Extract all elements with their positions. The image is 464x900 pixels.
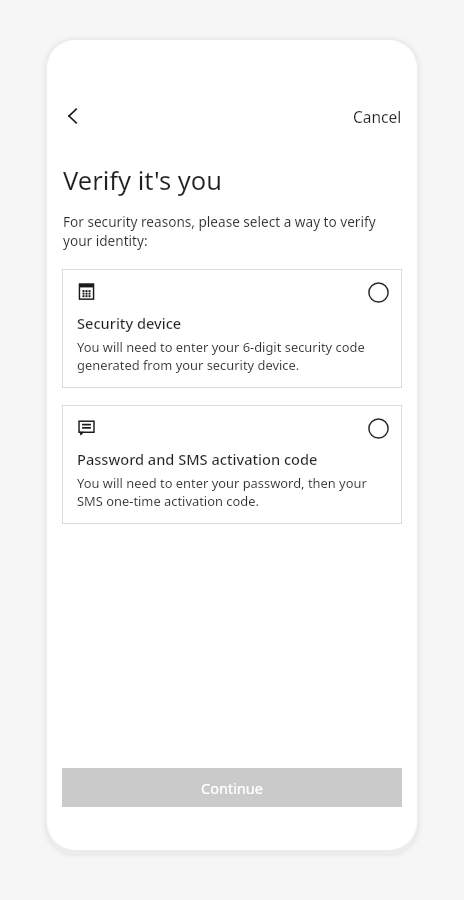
staticText: Verify it's you: [63, 163, 222, 198]
staticText: Cancel: [353, 106, 402, 127]
button[interactable]: Back: [53, 99, 93, 133]
staticText: Password and SMS activation code: [77, 449, 318, 469]
staticText: Continue: [201, 778, 263, 798]
staticText: You will need to enter your 6-digit secu…: [77, 338, 389, 374]
button[interactable]: Cancel: [338, 100, 417, 133]
button[interactable]: Security device: [62, 269, 402, 388]
staticText: You will need to enter your password, th…: [77, 474, 389, 510]
staticText: For security reasons, please select a wa…: [63, 212, 387, 250]
staticText: Security device: [77, 313, 182, 333]
button[interactable]: Password and SMS activation code: [62, 405, 402, 524]
button[interactable]: Continue: [62, 768, 402, 807]
